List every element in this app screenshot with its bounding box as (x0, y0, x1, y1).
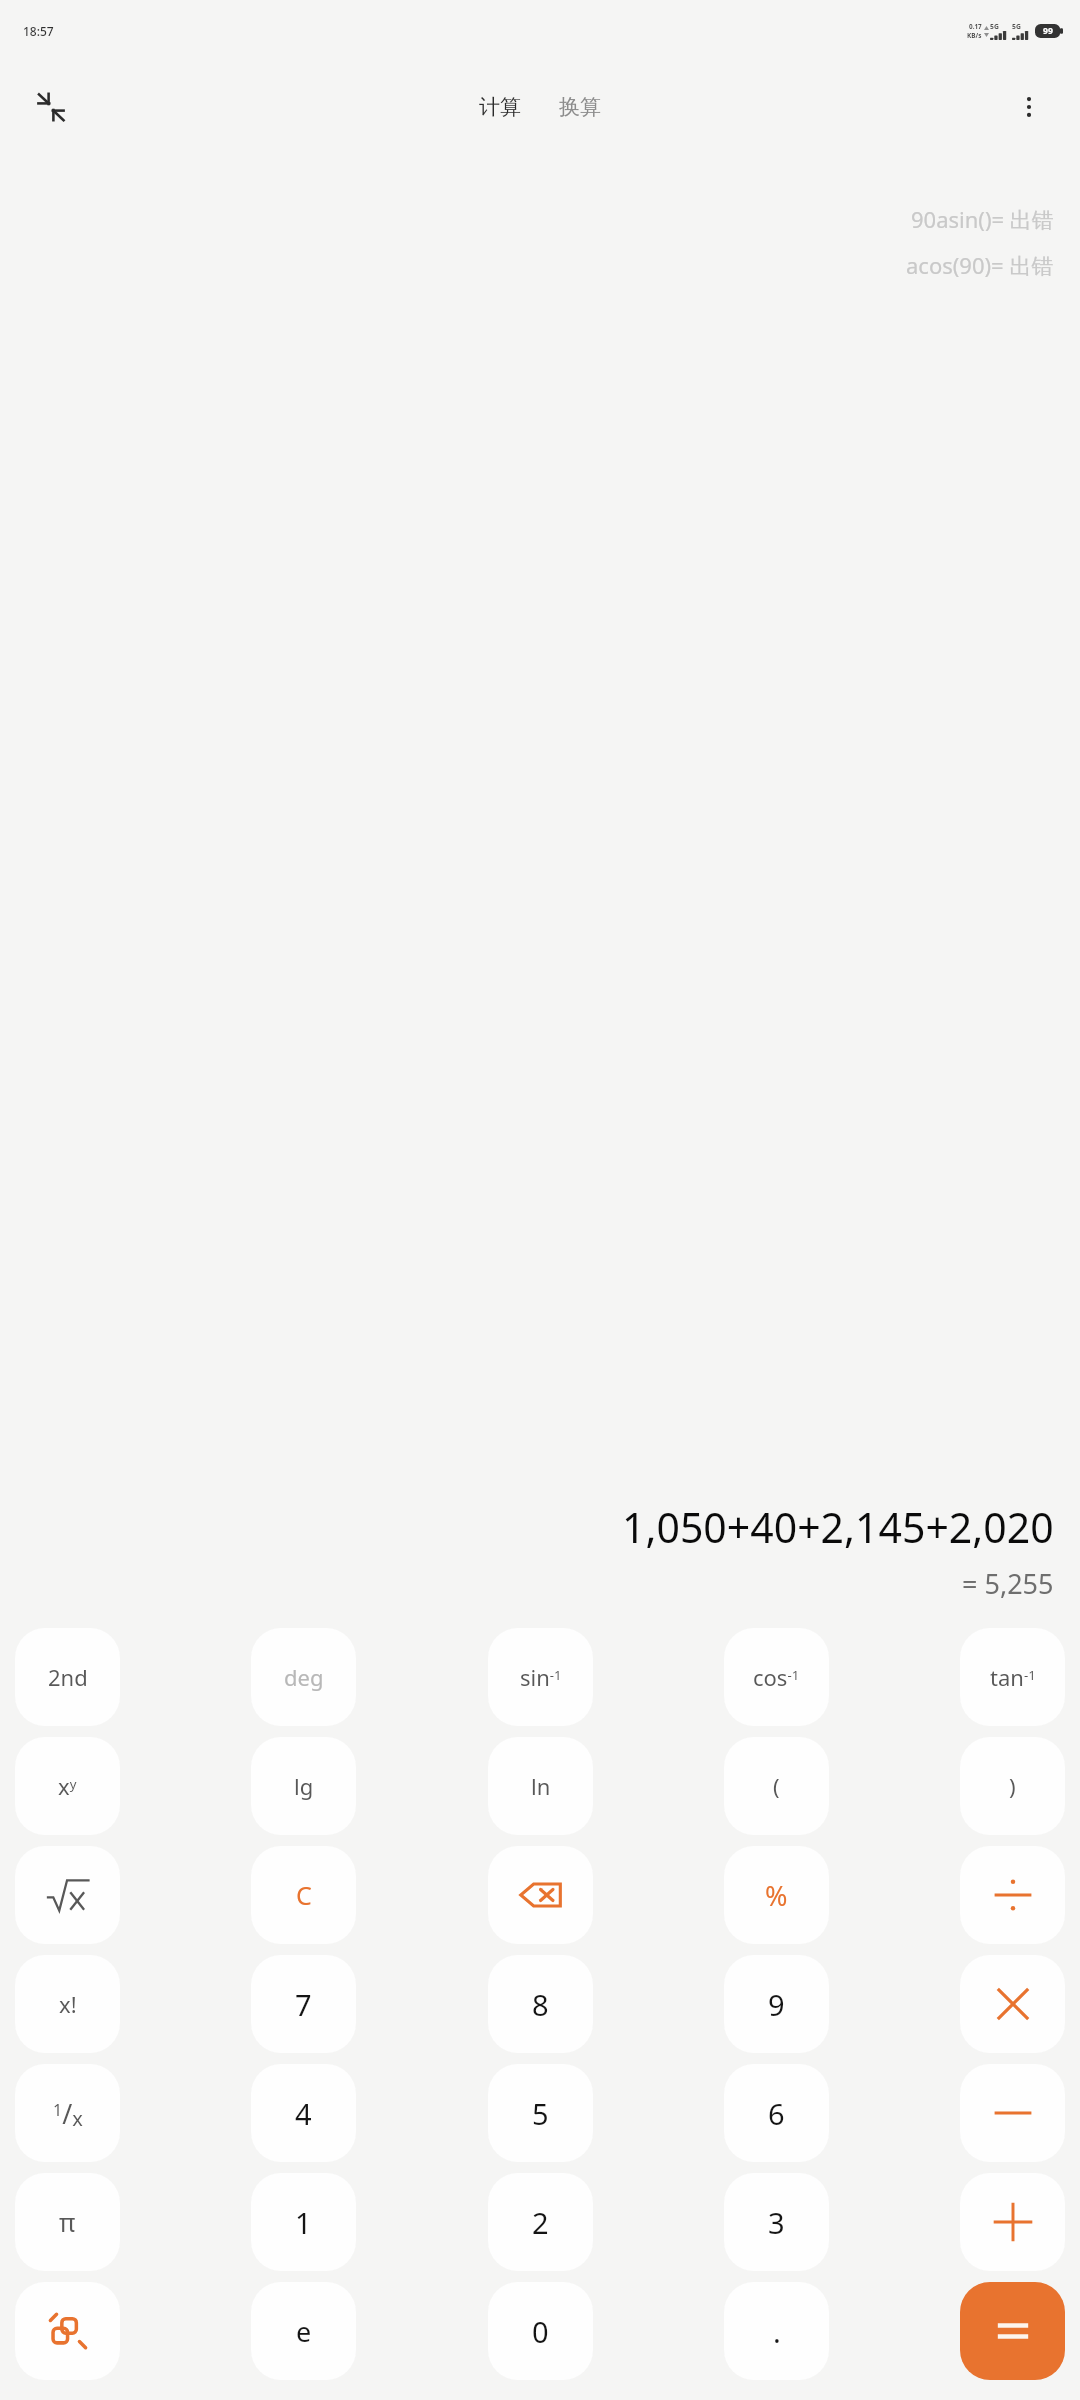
button[interactable]: Convert (15, 2282, 120, 2380)
staticText: = 5,255 (962, 1565, 1054, 1602)
staticText: xy (58, 1771, 77, 1801)
button[interactable]: Reciprocal (15, 2064, 120, 2162)
staticText: 2 (532, 2203, 549, 2242)
staticText: 5G (990, 22, 999, 31)
button[interactable]: e (251, 2282, 356, 2380)
button[interactable]: tan-1 (960, 1628, 1065, 1726)
button[interactable]: 3 (724, 2173, 829, 2271)
button[interactable]: Square root (15, 1846, 120, 1944)
staticText: 9 (768, 1985, 785, 2024)
button[interactable]: x! (15, 1955, 120, 2053)
button[interactable]: 2nd (15, 1628, 120, 1726)
button[interactable]: deg (251, 1628, 356, 1726)
staticText: 0.17 (969, 22, 982, 31)
staticText: tan-1 (990, 1662, 1036, 1692)
staticText: π (59, 2205, 76, 2239)
staticText: deg (284, 1662, 324, 1692)
button[interactable]: Equals (960, 2282, 1065, 2380)
button[interactable]: 换算 (547, 85, 613, 129)
staticText: 4 (295, 2094, 312, 2133)
button[interactable]: Divide (960, 1846, 1065, 1944)
staticText: x! (59, 1989, 77, 2019)
staticText: 换算 (559, 94, 601, 120)
button[interactable]: Minus (960, 2064, 1065, 2162)
staticText: 1/x (53, 2095, 83, 2132)
button[interactable]: 2 (488, 2173, 593, 2271)
button[interactable]: Collapse (22, 78, 80, 136)
staticText: 7 (295, 1985, 312, 2024)
button[interactable]: 9 (724, 1955, 829, 2053)
staticText: % (765, 1877, 788, 1914)
button[interactable]: C (251, 1846, 356, 1944)
button[interactable]: ( (724, 1737, 829, 1835)
staticText: 18:57 (23, 23, 54, 39)
button[interactable]: π (15, 2173, 120, 2271)
staticText: cos-1 (753, 1662, 800, 1692)
staticText: 5G (1012, 22, 1021, 31)
button[interactable]: 4 (251, 2064, 356, 2162)
button[interactable]: Plus (960, 2173, 1065, 2271)
staticText: 5 (532, 2094, 549, 2133)
button[interactable]: 0 (488, 2282, 593, 2380)
staticText: 0 (532, 2312, 549, 2351)
button[interactable]: Multiply (960, 1955, 1065, 2053)
button[interactable]: 6 (724, 2064, 829, 2162)
button[interactable]: Backspace (488, 1846, 593, 1944)
staticText: ( (773, 1771, 780, 1801)
button[interactable]: More options (1000, 78, 1058, 136)
staticText: sin-1 (520, 1662, 562, 1692)
staticText: C (296, 1878, 312, 1912)
staticText: 1,050+40+2,145+2,020 (622, 1499, 1054, 1555)
button[interactable]: sin-1 (488, 1628, 593, 1726)
staticText: 6 (768, 2094, 785, 2133)
staticText: 99 (1043, 25, 1053, 37)
staticText: e (296, 2313, 312, 2350)
staticText: lg (294, 1771, 314, 1801)
button[interactable]: 计算 (467, 85, 533, 129)
button[interactable]: 7 (251, 1955, 356, 2053)
staticText: . (773, 2312, 781, 2351)
button[interactable]: . (724, 2282, 829, 2380)
button[interactable]: ) (960, 1737, 1065, 1835)
staticText: 3 (768, 2203, 785, 2242)
staticText: ) (1009, 1771, 1016, 1801)
staticText: KB/s (967, 31, 982, 40)
staticText: 1 (295, 2203, 312, 2242)
button[interactable]: 1 (251, 2173, 356, 2271)
button[interactable]: xy (15, 1737, 120, 1835)
button[interactable]: 8 (488, 1955, 593, 2053)
button[interactable]: 5 (488, 2064, 593, 2162)
staticText: 计算 (479, 94, 521, 120)
staticText: acos(90)= 出错 (906, 250, 1054, 280)
staticText: 8 (532, 1985, 549, 2024)
button[interactable]: cos-1 (724, 1628, 829, 1726)
button[interactable]: lg (251, 1737, 356, 1835)
button[interactable]: ln (488, 1737, 593, 1835)
staticText: 2nd (48, 1662, 88, 1692)
staticText: ln (531, 1771, 551, 1801)
staticText: 90asin()= 出错 (911, 204, 1054, 234)
button[interactable]: % (724, 1846, 829, 1944)
